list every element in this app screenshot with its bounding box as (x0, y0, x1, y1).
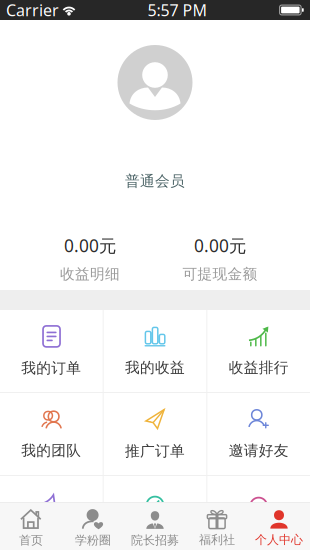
button[interactable]: 院长招募 (124, 505, 186, 548)
staticText: 首页 (19, 533, 43, 548)
staticText: 收益排行 (229, 358, 289, 376)
staticText: 个人中心 (255, 532, 303, 547)
staticText: 福利社 (199, 532, 235, 547)
staticText: 学粉圈 (75, 533, 111, 548)
staticText: 0.00元 (194, 234, 246, 257)
button[interactable]: 0.00元 (25, 234, 155, 283)
button[interactable]: 首页 (0, 505, 62, 548)
staticText: 普通会员 (125, 172, 185, 190)
button[interactable]: 我的订单 (0, 310, 103, 392)
button[interactable]: More (104, 476, 206, 550)
button[interactable]: More (207, 476, 310, 550)
staticText: 院长招募 (131, 533, 179, 548)
button[interactable]: 邀请好友 (207, 393, 310, 475)
button[interactable]: 福利社 (186, 505, 248, 547)
staticText: 可提现金额 (182, 265, 257, 283)
button[interactable]: 0.00元 (155, 234, 285, 283)
staticText: 我的订单 (21, 359, 81, 377)
button[interactable]: More (0, 476, 103, 550)
staticText: 0.00元 (64, 234, 116, 257)
button[interactable]: 收益排行 (207, 310, 310, 392)
button[interactable]: 推广订单 (104, 393, 206, 475)
staticText: 邀请好友 (229, 441, 289, 459)
staticText: 我的团队 (21, 441, 81, 459)
button[interactable]: 我的收益 (104, 310, 206, 392)
staticText: 我的收益 (125, 358, 185, 376)
staticText: 5:57 PM (147, 0, 207, 21)
button[interactable]: 我的团队 (0, 393, 103, 475)
staticText: 收益明细 (60, 265, 120, 283)
staticText: 推广订单 (125, 442, 185, 460)
button[interactable]: 个人中心 (248, 505, 310, 547)
button[interactable]: 学粉圈 (62, 505, 124, 548)
staticText: Carrier (6, 0, 59, 21)
